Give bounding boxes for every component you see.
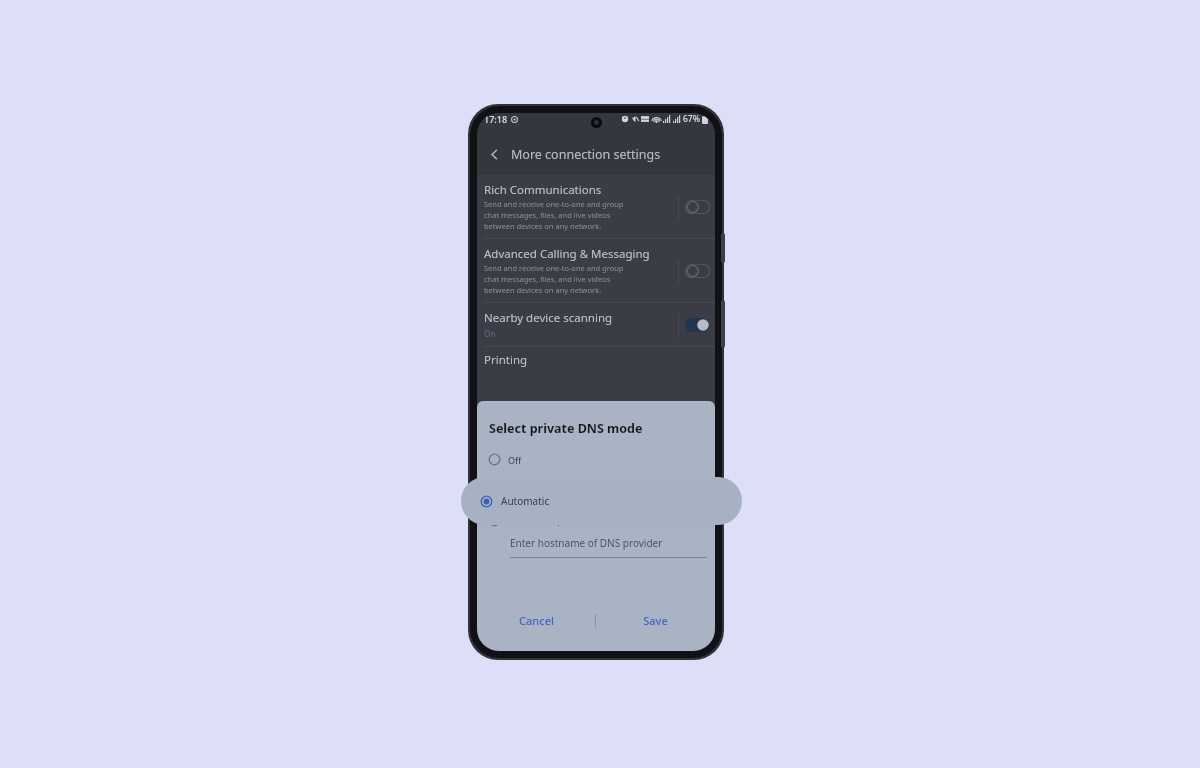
staticText: Send and receive one-to-one and group bbox=[484, 199, 624, 209]
staticText: Rich Communications bbox=[484, 182, 602, 198]
staticText: between devices on any network. bbox=[484, 285, 602, 295]
button[interactable]: Rich Communications bbox=[477, 175, 715, 238]
staticText: Cancel bbox=[519, 613, 554, 628]
staticText: Printing bbox=[484, 352, 528, 368]
staticText: Enter hostname of DNS provider bbox=[510, 536, 663, 550]
staticText: More connection settings bbox=[511, 146, 661, 163]
button[interactable]: Printing bbox=[477, 347, 715, 373]
staticText: On bbox=[484, 328, 496, 339]
button[interactable]: Private DNS provider hostname bbox=[477, 514, 715, 527]
button[interactable]: Automatic bbox=[461, 477, 742, 525]
staticText: between devices on any network. bbox=[484, 221, 602, 231]
staticText: chat messages, files, and live videos bbox=[484, 274, 611, 284]
staticText: 17:18 bbox=[484, 113, 508, 125]
staticText: Off bbox=[508, 454, 522, 466]
staticText: chat messages, files, and live videos bbox=[484, 210, 611, 220]
staticText: Advanced Calling & Messaging bbox=[484, 246, 650, 262]
button[interactable]: Off bbox=[477, 453, 715, 466]
button[interactable]: Toggle off bbox=[685, 264, 710, 278]
staticText: 67% bbox=[683, 113, 700, 125]
button[interactable]: Back bbox=[483, 143, 505, 165]
button[interactable]: Toggle on bbox=[685, 318, 710, 332]
button[interactable]: Toggle off bbox=[685, 200, 710, 214]
staticText: Send and receive one-to-one and group bbox=[484, 263, 624, 273]
staticText: Automatic bbox=[501, 494, 550, 508]
button[interactable]: Cancel bbox=[477, 607, 595, 634]
staticText: Select private DNS mode bbox=[489, 420, 643, 437]
staticText: Nearby device scanning bbox=[484, 310, 613, 326]
button[interactable]: Save bbox=[596, 607, 715, 634]
button[interactable]: Advanced Calling & Messaging bbox=[477, 239, 715, 302]
staticText: Save bbox=[643, 613, 668, 628]
button[interactable]: Nearby device scanning bbox=[477, 303, 715, 346]
